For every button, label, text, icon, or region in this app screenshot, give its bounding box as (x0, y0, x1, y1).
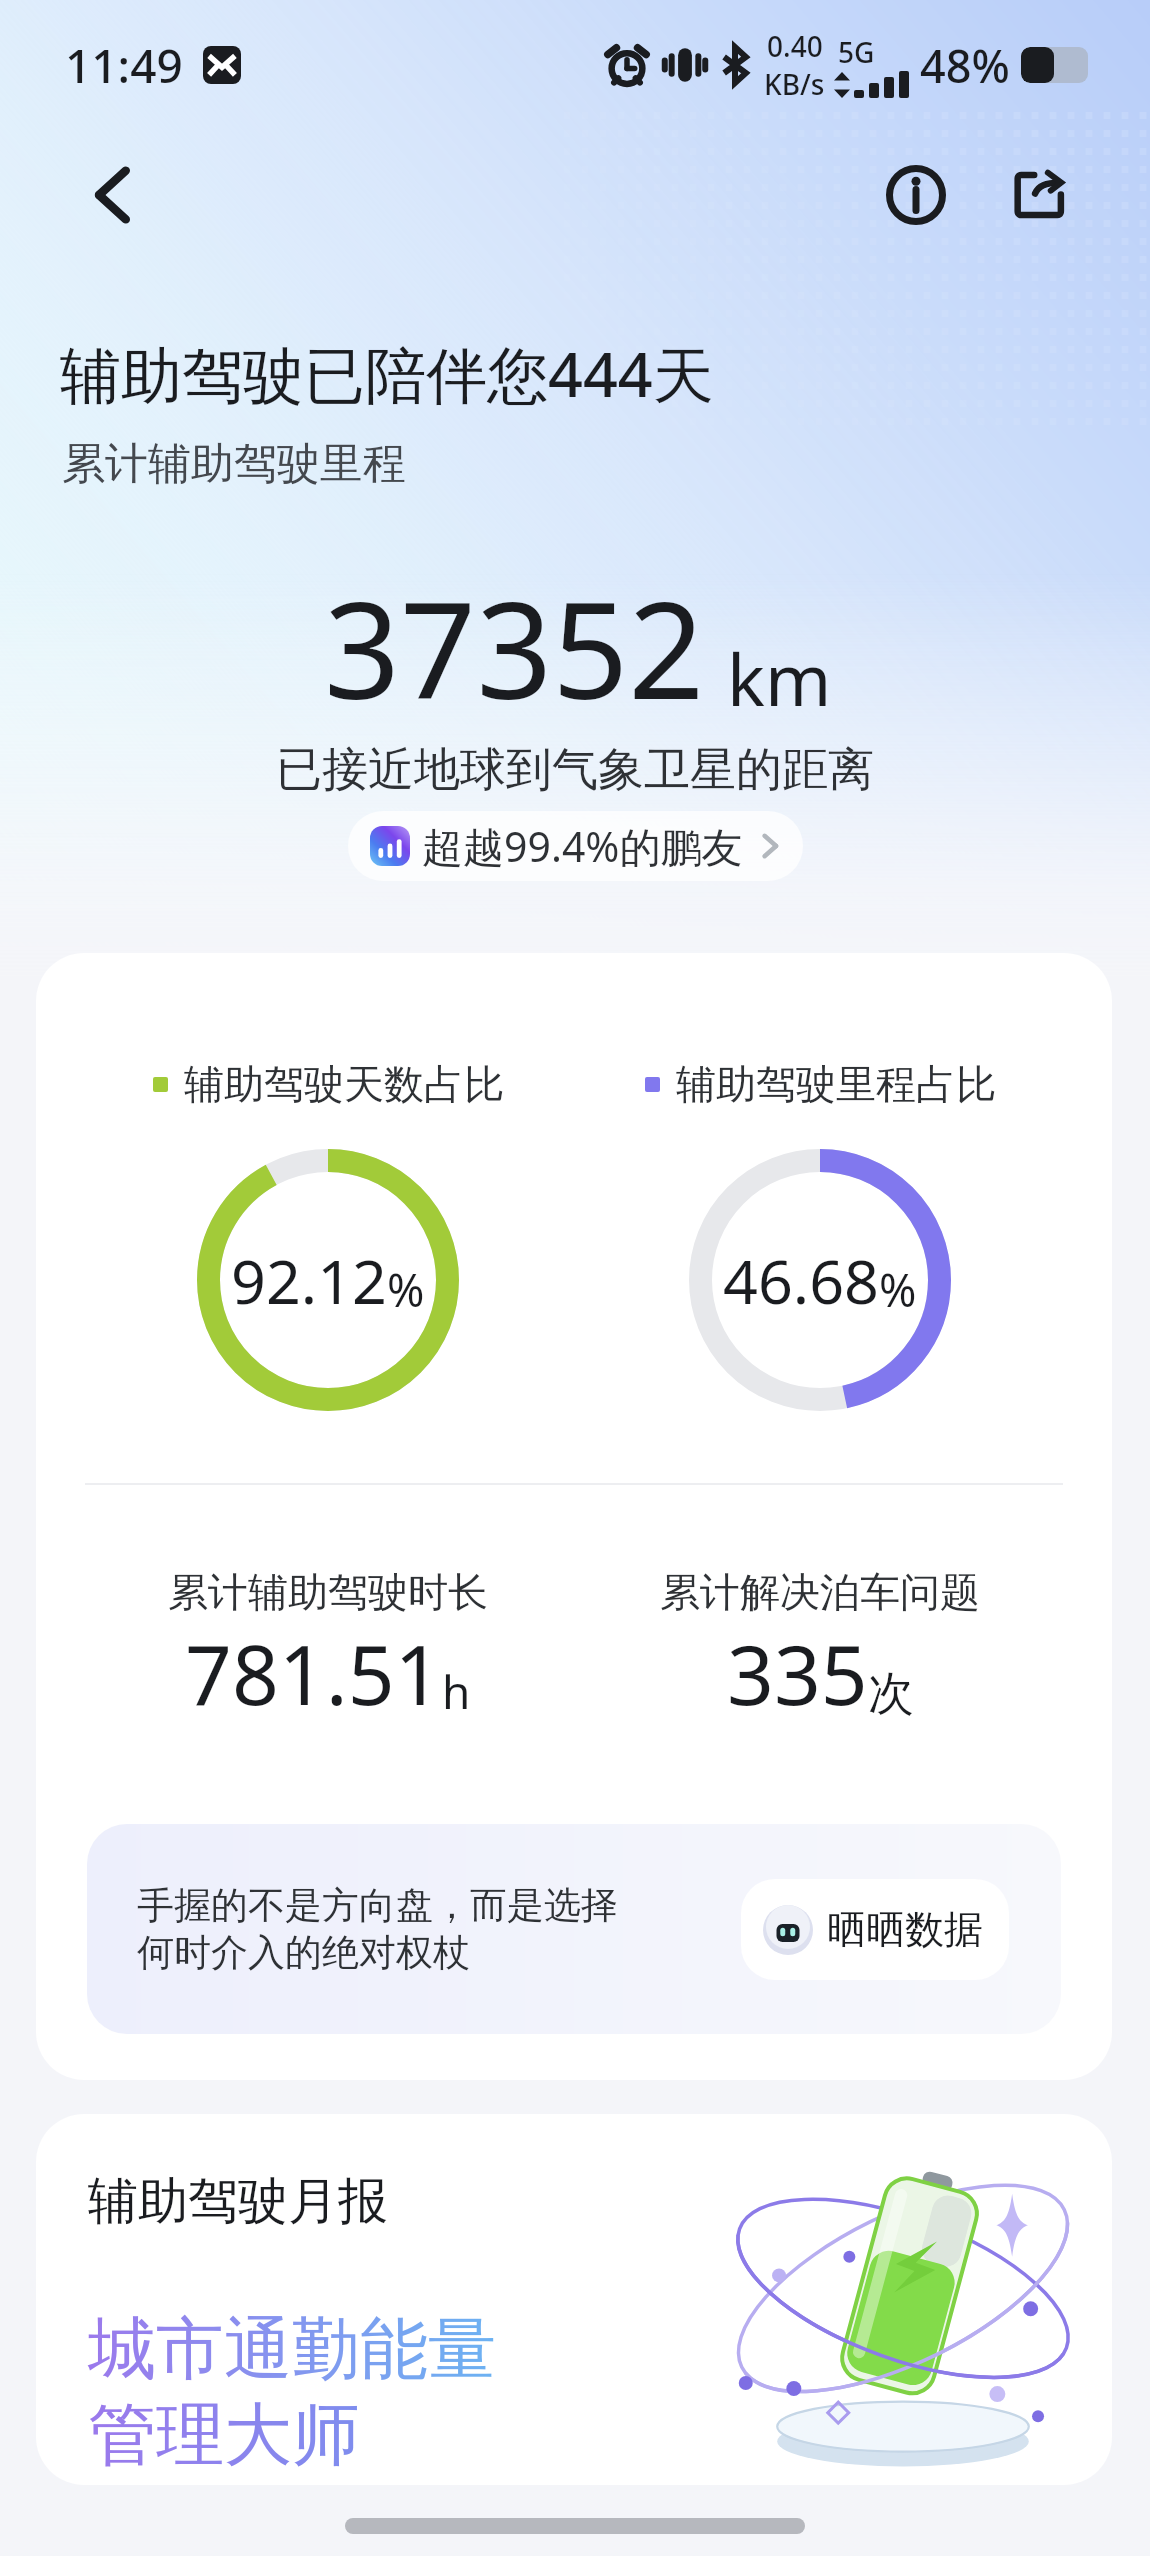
staticText: 已接近地球到气象卫星的距离 (0, 741, 1150, 799)
staticText: 管理大师 (88, 2393, 360, 2479)
button[interactable]: Info (869, 148, 963, 242)
button[interactable]: 辅助驾驶月报 (36, 2114, 1112, 2485)
staticText: km (727, 630, 832, 727)
staticText: % (879, 1259, 917, 1320)
staticText: KB/s (764, 65, 825, 103)
staticText: 46.68 (723, 1239, 879, 1322)
staticText: 累计解决泊车问题 (660, 1567, 980, 1617)
staticText: 781.51 (185, 1617, 442, 1729)
staticText: 37352 (324, 557, 705, 738)
staticText: % (387, 1259, 425, 1320)
staticText: 335 (727, 1617, 868, 1729)
staticText: 5G (838, 33, 875, 71)
staticText: 0.40 (767, 27, 823, 65)
staticText: 手握的不是方向盘，而是选择 (137, 1882, 618, 1929)
staticText: h (442, 1660, 471, 1723)
button[interactable]: 晒晒数据 (741, 1879, 1009, 1980)
staticText: 92.12 (231, 1239, 387, 1322)
button[interactable]: 超越99.4%的鹏友 (348, 811, 803, 881)
staticText: 超越99.4%的鹏友 (422, 818, 743, 874)
staticText: 48% (920, 35, 1010, 96)
staticText: 晒晒数据 (827, 1905, 983, 1954)
staticText: 辅助驾驶里程占比 (676, 1059, 996, 1109)
staticText: 辅助驾驶天数占比 (184, 1059, 504, 1109)
button[interactable]: Back (66, 148, 160, 242)
staticText: 何时介入的绝对权杖 (137, 1929, 470, 1976)
staticText: 辅助驾驶月报 (88, 2170, 388, 2233)
staticText: 辅助驾驶已陪伴您444天 (60, 332, 714, 415)
staticText: 11:49 (65, 34, 183, 97)
staticText: 累计辅助驾驶里程 (62, 437, 406, 491)
staticText: 累计辅助驾驶时长 (168, 1567, 488, 1617)
staticText: 次 (868, 1665, 914, 1723)
staticText: 城市通勤能量 (88, 2307, 496, 2393)
button[interactable]: Share (993, 148, 1087, 242)
